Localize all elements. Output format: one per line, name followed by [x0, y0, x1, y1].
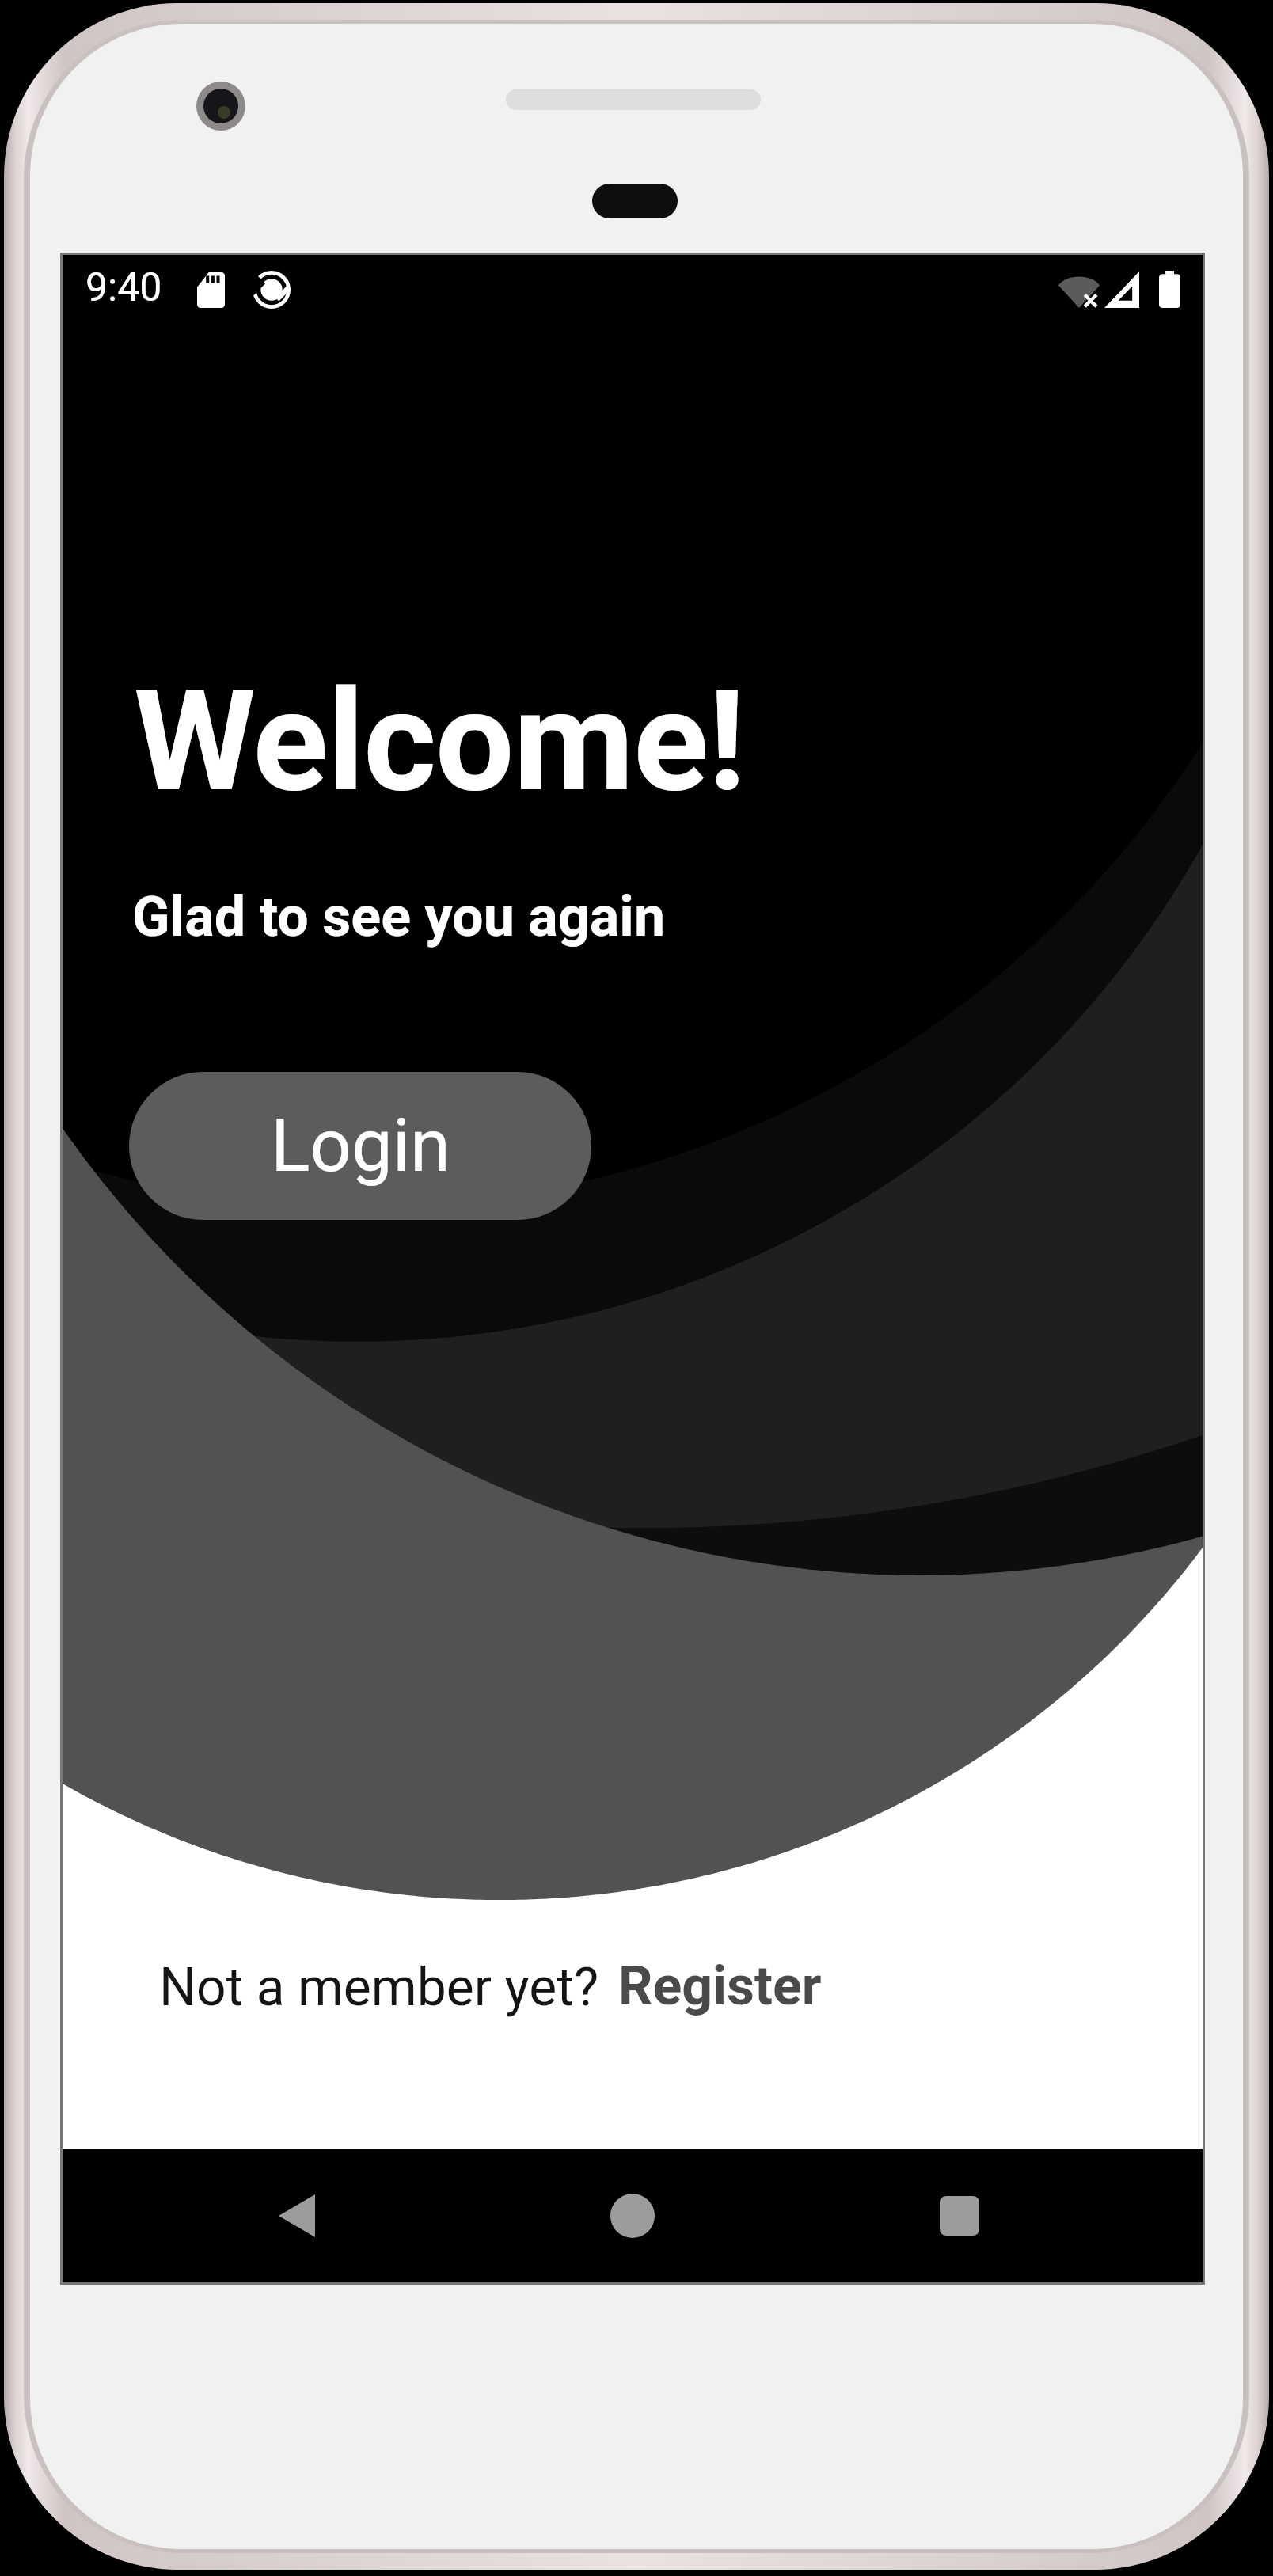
- button[interactable]: Recent apps: [912, 2149, 1007, 2282]
- button[interactable]: Login: [129, 1072, 591, 1220]
- staticText: Register: [618, 1955, 822, 2018]
- staticText: Glad to see you again: [132, 884, 666, 949]
- button[interactable]: Register: [617, 1955, 823, 2018]
- button[interactable]: Back: [249, 2149, 344, 2282]
- staticText: Login: [271, 1104, 450, 1189]
- button[interactable]: Home: [585, 2149, 680, 2282]
- staticText: 9:40: [85, 264, 162, 311]
- staticText: Not a member yet?: [159, 1957, 599, 2018]
- staticText: Welcome!: [134, 660, 745, 823]
